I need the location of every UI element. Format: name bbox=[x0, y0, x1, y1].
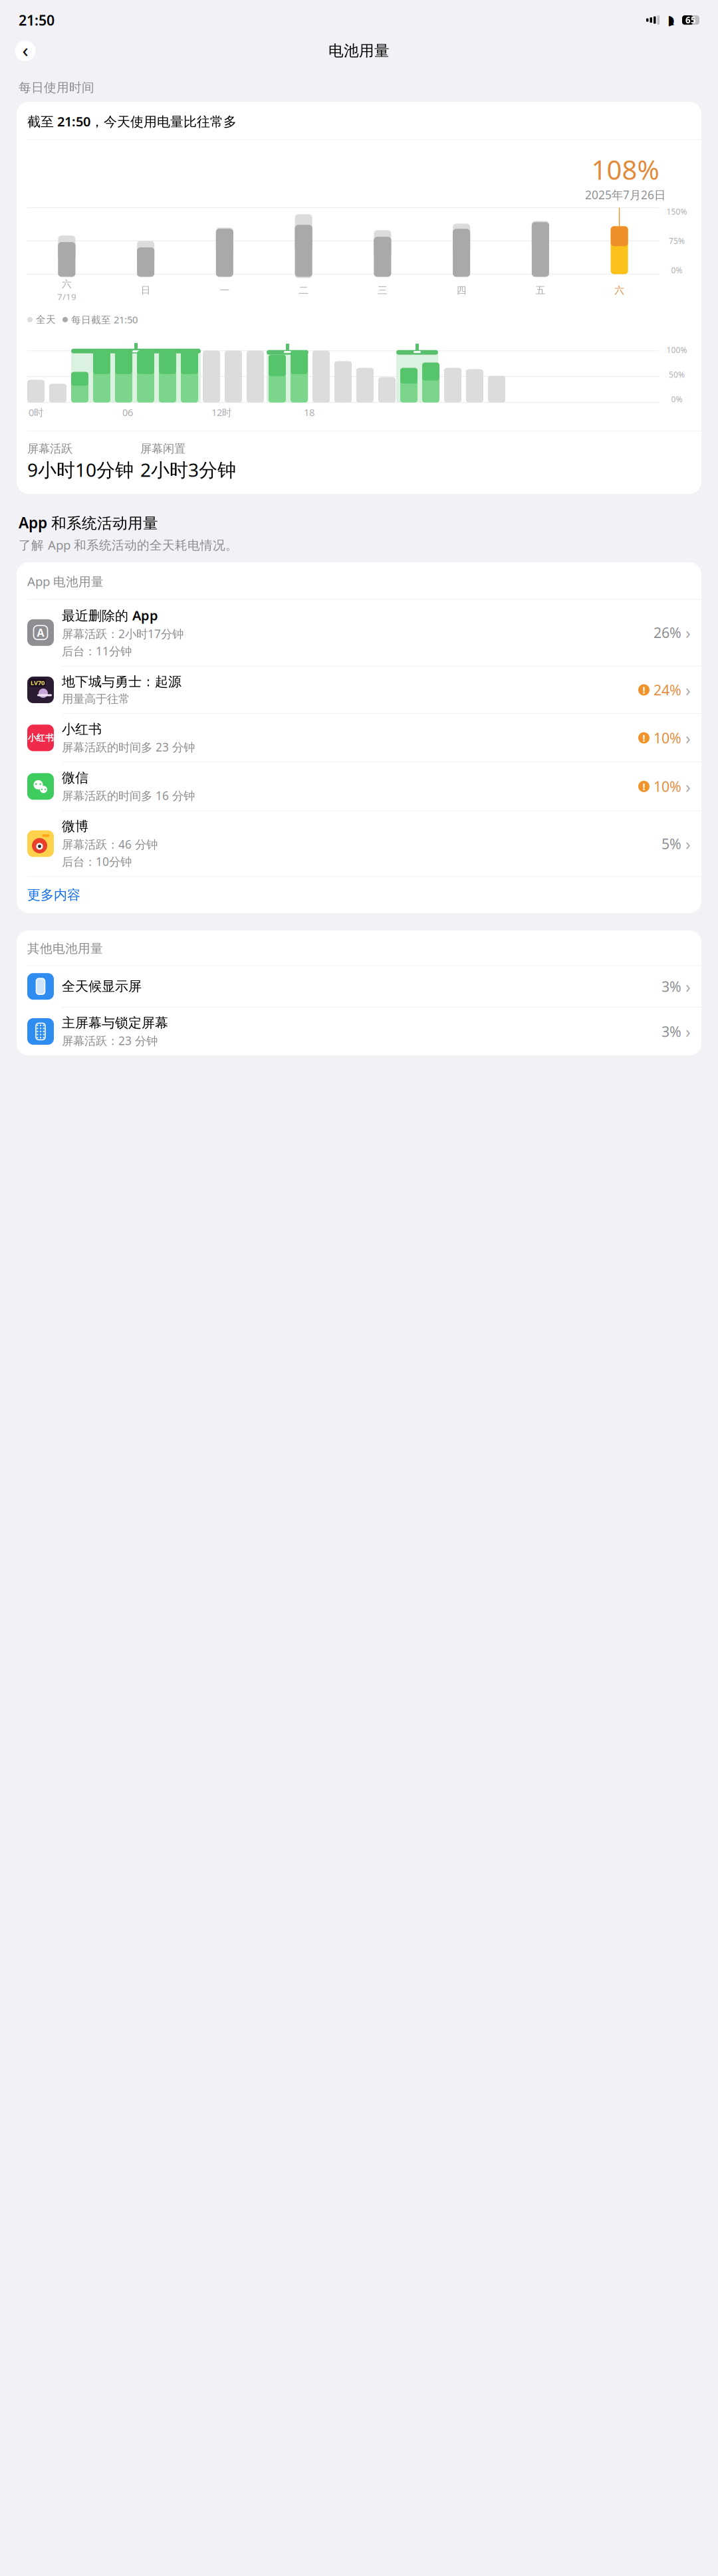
staticText: 日 bbox=[141, 284, 151, 296]
button[interactable]: A bbox=[17, 599, 701, 666]
staticText: 一 bbox=[220, 284, 230, 296]
staticText: 10% bbox=[654, 728, 681, 747]
staticText: 屏幕活跃：2小时17分钟 bbox=[62, 626, 183, 641]
staticText: ◗ bbox=[667, 12, 675, 28]
staticText: 四 bbox=[456, 284, 466, 296]
staticText: › bbox=[685, 621, 691, 644]
staticText: 后台：11分钟 bbox=[62, 643, 132, 659]
staticText: 06 bbox=[122, 406, 133, 419]
staticText: App 和系统活动用量 bbox=[19, 512, 158, 533]
staticText: 5% bbox=[661, 834, 681, 853]
button[interactable]: 微信 bbox=[17, 762, 701, 811]
staticText: 0% bbox=[671, 265, 682, 275]
staticText: 二 bbox=[299, 284, 309, 296]
staticText: 微信 bbox=[62, 770, 88, 786]
staticText: 3% bbox=[661, 1022, 681, 1041]
staticText: 屏幕闲置 bbox=[140, 442, 185, 456]
staticText: 屏幕活跃 bbox=[27, 442, 72, 456]
staticText: 屏幕活跃的时间多 16 分钟 bbox=[62, 788, 195, 803]
button[interactable]: 更多内容 bbox=[17, 877, 701, 913]
staticText: ! bbox=[643, 780, 645, 793]
staticText: 小红书 bbox=[62, 721, 102, 737]
staticText: 用量高于往常 bbox=[62, 692, 130, 706]
button[interactable]: 微博 bbox=[17, 811, 701, 876]
button[interactable]: 返回 bbox=[11, 36, 40, 65]
button[interactable]: LV70 bbox=[17, 666, 701, 713]
staticText: 了解 App 和系统活动的全天耗电情况。 bbox=[19, 537, 238, 553]
staticText: 六 bbox=[62, 278, 72, 290]
staticText: 每日截至 21:50 bbox=[71, 313, 138, 326]
staticText: › bbox=[685, 727, 691, 749]
staticText: 75% bbox=[669, 236, 685, 246]
staticText: App 电池用量 bbox=[27, 573, 104, 590]
staticText: 26% bbox=[654, 623, 681, 642]
staticText: 0时 bbox=[29, 406, 44, 419]
staticText: 屏幕活跃：23 分钟 bbox=[62, 1033, 158, 1048]
staticText: 150% bbox=[666, 206, 687, 217]
staticText: ‹ bbox=[22, 37, 28, 63]
staticText: 屏幕活跃的时间多 23 分钟 bbox=[62, 739, 195, 755]
staticText: 2小时3分钟 bbox=[140, 457, 236, 482]
staticText: 7/19 bbox=[57, 291, 76, 303]
staticText: 屏幕活跃：46 分钟 bbox=[62, 837, 158, 852]
staticText: 电池用量 bbox=[328, 41, 390, 60]
staticText: 3% bbox=[661, 977, 681, 996]
staticText: 24% bbox=[654, 680, 681, 699]
staticText: 12时 bbox=[211, 406, 232, 419]
staticText: 后台：10分钟 bbox=[62, 854, 132, 869]
staticText: A bbox=[37, 626, 44, 640]
staticText: 2025年7月26日 bbox=[585, 187, 665, 202]
staticText: 每日使用时间 bbox=[19, 80, 94, 95]
staticText: › bbox=[685, 832, 691, 855]
staticText: 地下城与勇士：起源 bbox=[62, 674, 181, 690]
staticText: 截至 21:50，今天使用电量比往常多 bbox=[27, 113, 237, 130]
staticText: 全天 bbox=[36, 314, 56, 326]
staticText: 100% bbox=[666, 345, 687, 355]
staticText: 10% bbox=[654, 777, 681, 796]
staticText: 主屏幕与锁定屏幕 bbox=[62, 1015, 168, 1031]
staticText: 50% bbox=[669, 369, 685, 380]
staticText: 108% bbox=[591, 152, 659, 187]
staticText: 更多内容 bbox=[27, 887, 80, 903]
button[interactable]: 主屏幕与锁定屏幕 bbox=[17, 1007, 701, 1056]
staticText: › bbox=[685, 1020, 691, 1043]
staticText: › bbox=[685, 775, 691, 798]
staticText: LV70 bbox=[31, 679, 45, 687]
staticText: 全天候显示屏 bbox=[62, 978, 142, 995]
staticText: 9小时10分钟 bbox=[27, 457, 134, 482]
staticText: 21:50 bbox=[19, 11, 55, 29]
staticText: › bbox=[685, 975, 691, 998]
staticText: 其他电池用量 bbox=[27, 941, 103, 956]
staticText: 0% bbox=[671, 394, 682, 404]
staticText: ▲ bbox=[668, 18, 674, 26]
staticText: 65 bbox=[685, 14, 696, 26]
staticText: › bbox=[685, 679, 691, 701]
staticText: 五 bbox=[535, 284, 545, 296]
staticText: 微博 bbox=[62, 818, 88, 835]
staticText: ! bbox=[643, 683, 645, 696]
staticText: 18 bbox=[304, 406, 314, 419]
staticText: 三 bbox=[378, 284, 388, 296]
staticText: 六 bbox=[614, 284, 624, 296]
staticText: 最近删除的 App bbox=[62, 606, 158, 624]
staticText: 小红书 bbox=[28, 732, 54, 743]
staticText: ! bbox=[643, 731, 645, 744]
button[interactable]: 全天候显示屏 bbox=[17, 966, 701, 1007]
button[interactable]: 小红书 bbox=[17, 714, 701, 762]
